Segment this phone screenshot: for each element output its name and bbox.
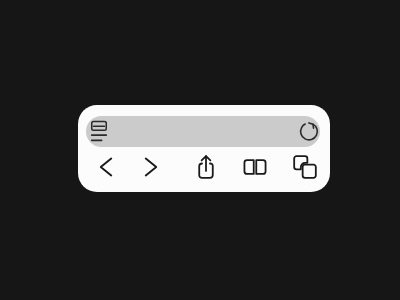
button[interactable]: Forward bbox=[137, 153, 165, 181]
button[interactable]: Reload bbox=[298, 120, 320, 143]
button[interactable]: Tabs bbox=[291, 153, 319, 181]
button[interactable]: Bookmarks bbox=[241, 153, 269, 181]
button[interactable]: Back bbox=[92, 153, 120, 181]
button[interactable]: Share bbox=[192, 153, 220, 181]
button[interactable]: Page settings bbox=[88, 120, 110, 143]
button[interactable] bbox=[86, 116, 320, 147]
